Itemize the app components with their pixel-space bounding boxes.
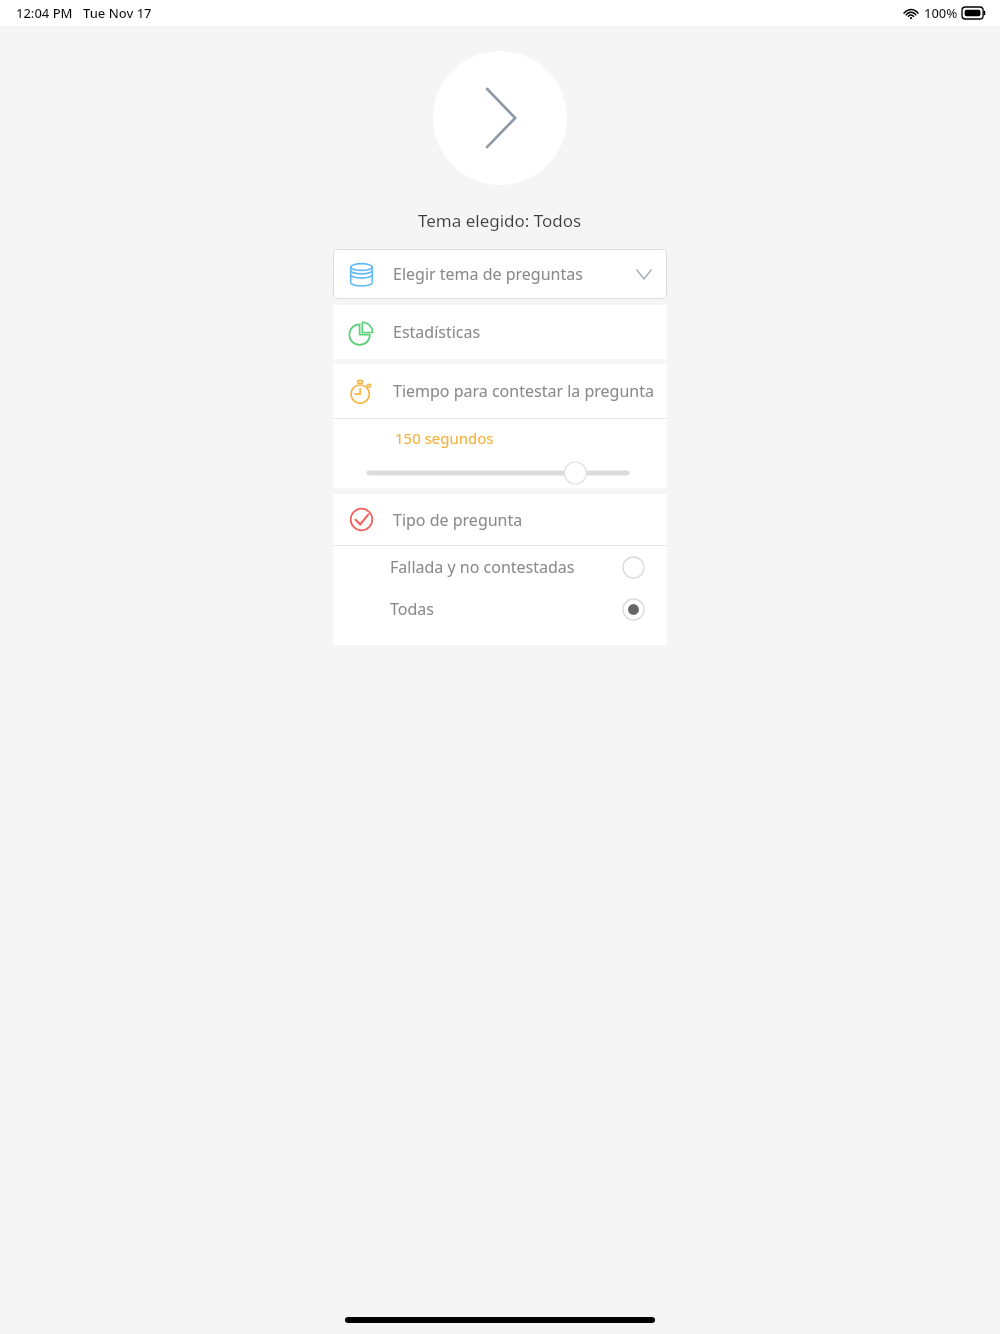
button[interactable]: Fallada y no contestadas [333,546,667,588]
staticText: Tiempo para contestar la pregunta [393,380,654,402]
staticText: Tue Nov 17 [83,4,152,22]
button[interactable]: Empezar [433,51,567,185]
button[interactable]: Estadísticas [333,305,667,359]
staticText: 12:04 PM [16,4,73,22]
staticText: Tipo de pregunta [393,509,523,531]
button[interactable]: Tiempo para contestar la pregunta [333,364,667,418]
staticText: 100% [924,4,958,22]
button[interactable]: Tiempo [333,460,667,486]
staticText: Fallada y no contestadas [390,556,575,578]
button[interactable]: Todas [333,588,667,630]
staticText: Elegir tema de preguntas [393,263,637,285]
staticText: 150 segundos [395,428,494,448]
button[interactable]: Elegir tema de preguntas [333,249,667,299]
staticText: Todas [390,598,434,620]
button[interactable]: Tipo de pregunta [333,494,667,545]
staticText: Tema elegido: Todos [418,209,582,232]
staticText: Estadísticas [393,321,481,343]
